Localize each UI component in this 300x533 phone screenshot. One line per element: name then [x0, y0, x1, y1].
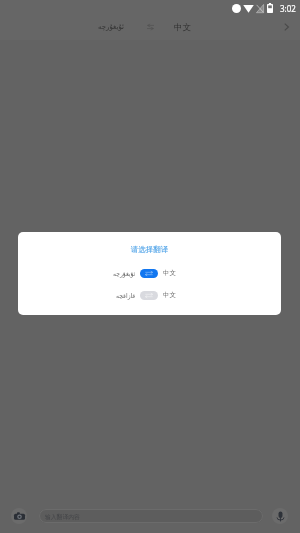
staticText: 中文 — [163, 291, 176, 299]
staticText: قازاقچە — [116, 292, 136, 299]
staticText: 中文 — [174, 22, 191, 33]
button[interactable]: ئۇيغۇرچە — [95, 18, 127, 36]
button[interactable]: 输入翻译内容 — [39, 509, 263, 523]
staticText: ئۇيغۇرچە — [98, 23, 124, 31]
button[interactable]: ئۇيغۇرچە — [18, 267, 281, 279]
staticText: 请选择翻译 — [18, 245, 281, 254]
staticText: 输入翻译内容 — [45, 513, 80, 520]
button[interactable]: قازاقچە — [18, 289, 281, 301]
button[interactable]: Voice input — [272, 508, 288, 524]
staticText: 3:02 — [280, 3, 296, 14]
staticText: 中文 — [163, 269, 176, 277]
staticText: ئۇيغۇرچە — [113, 270, 136, 277]
button[interactable]: 中文 — [170, 18, 194, 36]
button[interactable]: Camera — [11, 508, 27, 524]
button[interactable]: More — [278, 19, 294, 35]
button[interactable]: Swap languages — [143, 20, 157, 34]
